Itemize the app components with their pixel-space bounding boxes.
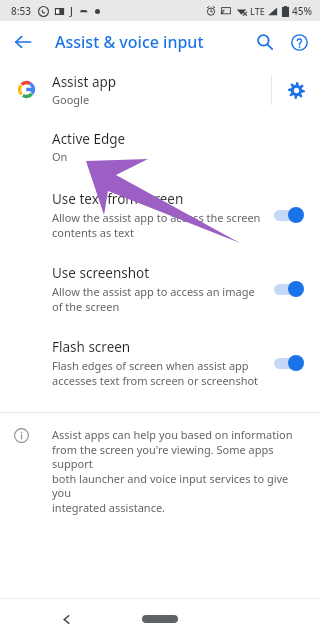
staticText: both launcher and voice input services t… [52,471,306,500]
button[interactable]: Home [142,615,178,623]
staticText: contents as text [52,225,134,240]
staticText: Assist & voice input [55,31,204,53]
staticText: On [52,149,68,164]
staticText: Active Edge [52,130,126,148]
staticText: Use screenshot [52,264,150,282]
staticText: of the screen [52,299,120,314]
staticText: 45% [292,4,312,18]
staticText: Allow the assist app to access an image [52,284,255,299]
staticText: Google [52,92,90,107]
button[interactable]: Use screenshot [0,252,320,326]
staticText: Assist app [52,73,117,91]
staticText: from the screen you're viewing. Some app… [52,442,306,471]
staticText: Flash edges of screen when assist app [52,358,249,373]
button[interactable]: Active Edge [0,116,320,178]
button[interactable]: Use text from screen [0,178,320,252]
button[interactable]: Flash screen [0,326,320,400]
button[interactable]: Assist app settings [272,66,320,114]
staticText: Assist apps can help you based on inform… [52,427,293,442]
staticText: J [70,4,73,18]
staticText: 8:53 [11,4,31,18]
button[interactable]: Toggle [272,352,308,374]
button[interactable]: Toggle [272,204,308,226]
button[interactable]: Back [52,605,80,633]
button[interactable]: Help [282,25,316,59]
staticText: accesses text from screen or screenshot [52,373,259,388]
button[interactable]: Search [248,25,282,59]
staticText: LTE [250,5,265,17]
staticText: Flash screen [52,338,131,356]
staticText: Allow the assist app to access the scree… [52,210,261,225]
button[interactable]: Toggle [272,278,308,300]
button[interactable]: Back [6,25,40,59]
staticText: integrated assistance. [52,500,166,515]
staticText: Use text from screen [52,190,184,208]
button[interactable]: Assist app [0,63,320,116]
